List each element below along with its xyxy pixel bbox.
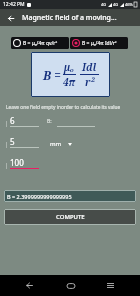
- staticText: 4G: [113, 2, 119, 7]
- staticText: Magnetic field of a moving...: [22, 13, 117, 23]
- button[interactable]: Home: [60, 275, 81, 296]
- staticText: B = 2.3999999999999995: [7, 193, 72, 200]
- staticText: COMPUTE: [56, 213, 85, 221]
- button[interactable]: B = μ₀/4π qv/r²: [11, 37, 69, 49]
- staticText: mm: [50, 140, 62, 148]
- staticText: 4π: [63, 75, 76, 89]
- staticText: 12:42 PM: [3, 1, 25, 8]
- staticText: Leave one field empty inorder to calcula…: [6, 104, 121, 111]
- button[interactable]: mm: [50, 140, 72, 148]
- staticText: B:: [47, 118, 52, 125]
- button[interactable]: Back: [19, 275, 40, 296]
- staticText: Idl: [82, 60, 97, 74]
- button[interactable]: COMPUTE: [4, 209, 136, 225]
- staticText: 5: [10, 136, 15, 147]
- staticText: r²: [85, 75, 95, 89]
- staticText: 4G: [101, 2, 107, 7]
- staticText: 100: [10, 157, 24, 168]
- staticText: μₒ: [64, 60, 75, 74]
- staticText: 6: [10, 115, 15, 126]
- staticText: B = μ₀/4π qv/r²: [23, 40, 58, 47]
- button[interactable]: Recent apps: [100, 275, 121, 296]
- staticText: B =: [43, 67, 61, 83]
- staticText: 46%: [125, 2, 133, 7]
- button[interactable]: Back: [4, 11, 18, 25]
- staticText: B = μ₀/4π Idl/r²: [82, 40, 117, 47]
- button[interactable]: B = μ₀/4π Idl/r²: [70, 37, 128, 49]
